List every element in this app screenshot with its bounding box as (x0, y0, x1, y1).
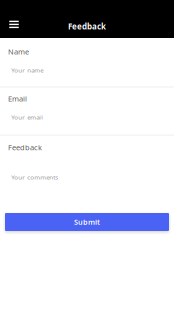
button[interactable]: Feedback (0, 136, 174, 213)
staticText: Feedback (68, 21, 106, 32)
staticText: Name (8, 46, 29, 57)
button[interactable]: Name (0, 38, 174, 86)
staticText: Your comments (11, 173, 58, 181)
staticText: Email (8, 93, 27, 104)
button[interactable]: Menu (4, 14, 24, 34)
staticText: Submit (74, 217, 100, 227)
staticText: Your email (11, 113, 43, 121)
button[interactable]: Email (0, 88, 174, 134)
staticText: Your name (11, 66, 43, 74)
button[interactable]: Submit (5, 213, 169, 231)
staticText: Feedback (8, 142, 42, 152)
